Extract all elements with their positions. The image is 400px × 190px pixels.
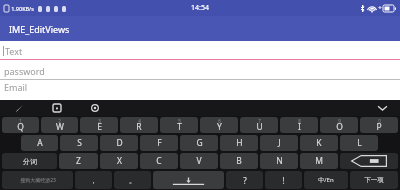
staticText: 搜狗大藏经游23 <box>20 177 56 184</box>
staticText: Y <box>217 121 222 133</box>
button[interactable]: ， <box>75 171 112 189</box>
button[interactable]: password <box>0 60 400 80</box>
staticText: 7 <box>258 118 261 124</box>
button[interactable]: A <box>21 135 58 151</box>
button[interactable]: Clipboard <box>49 100 65 116</box>
staticText: Email <box>4 81 28 93</box>
staticText: D <box>116 137 123 149</box>
button[interactable]: Z <box>59 153 98 169</box>
staticText: 。 <box>129 176 136 185</box>
staticText: 6 <box>218 118 221 124</box>
staticText: 8 <box>298 118 301 124</box>
button[interactable]: 3 <box>80 117 118 133</box>
button[interactable]: 分词 <box>2 153 57 169</box>
staticText: F <box>157 137 162 149</box>
button[interactable]: S <box>60 135 98 151</box>
staticText: K <box>316 137 322 149</box>
staticText: 14:54 <box>191 3 209 13</box>
button[interactable]: L <box>340 135 378 151</box>
button[interactable]: 中/En <box>304 171 348 189</box>
button[interactable]: F <box>140 135 178 151</box>
staticText: W <box>56 121 64 133</box>
staticText: O <box>336 121 343 133</box>
staticText: L <box>357 137 362 149</box>
button[interactable]: ! <box>265 171 302 189</box>
staticText: G <box>196 137 203 149</box>
button[interactable]: ? <box>226 171 263 189</box>
staticText: 1.90KB/s <box>11 5 34 12</box>
button[interactable]: M <box>300 153 338 169</box>
button[interactable]: Backspace <box>340 153 398 169</box>
staticText: E <box>97 121 102 133</box>
staticText: ? <box>243 175 247 186</box>
staticText: 5 <box>178 118 181 124</box>
button[interactable]: D <box>100 135 138 151</box>
staticText: M <box>315 155 323 167</box>
staticText: IME_EditViews <box>9 23 70 35</box>
button[interactable]: Settings <box>87 100 103 116</box>
button[interactable]: C <box>140 153 178 169</box>
button[interactable]: 。 <box>114 171 151 189</box>
button[interactable]: 7 <box>240 117 278 133</box>
button[interactable]: V <box>180 153 218 169</box>
button[interactable]: 2 <box>41 117 78 133</box>
button[interactable]: Hide keyboard <box>374 100 390 116</box>
button[interactable]: X <box>100 153 138 169</box>
button[interactable]: H <box>220 135 258 151</box>
button[interactable]: 8 <box>280 117 318 133</box>
staticText: 分词 <box>23 157 37 166</box>
staticText: R <box>136 121 142 133</box>
staticText: 9 <box>338 118 341 124</box>
button[interactable]: G <box>180 135 218 151</box>
staticText: ， <box>90 176 97 185</box>
staticText: Text <box>5 45 23 57</box>
staticText: T <box>177 121 182 133</box>
button[interactable]: K <box>300 135 338 151</box>
button[interactable]: 5 <box>160 117 198 133</box>
staticText: C <box>156 155 162 167</box>
staticText: + <box>378 4 382 12</box>
button[interactable]: Space <box>153 171 224 189</box>
staticText: X <box>117 155 122 167</box>
button[interactable]: 6 <box>200 117 238 133</box>
staticText: U <box>256 121 263 133</box>
staticText: H <box>236 137 243 149</box>
button[interactable]: J <box>260 135 298 151</box>
staticText: 1 <box>19 118 22 124</box>
staticText: B <box>236 155 242 167</box>
staticText: password <box>4 65 45 77</box>
button[interactable]: 1 <box>2 117 39 133</box>
staticText: P <box>376 121 382 133</box>
button[interactable]: Email <box>0 80 400 100</box>
staticText: S <box>77 137 82 149</box>
button[interactable]: Text <box>0 41 400 60</box>
button[interactable]: 4 <box>120 117 158 133</box>
button[interactable]: 9 <box>320 117 358 133</box>
staticText: 4 <box>138 118 141 124</box>
staticText: Q <box>17 121 24 133</box>
staticText: ! <box>282 175 285 186</box>
staticText: 下一项 <box>364 176 384 184</box>
button[interactable]: 搜狗大藏经游23 <box>2 171 73 189</box>
staticText: V <box>196 155 202 167</box>
staticText: I <box>298 121 301 133</box>
staticText: 2 <box>58 118 61 124</box>
button[interactable]: Handwriting <box>11 100 27 116</box>
button[interactable]: 下一项 <box>350 171 398 189</box>
staticText: J <box>278 137 281 149</box>
staticText: 中/En <box>318 176 334 184</box>
button[interactable]: N <box>260 153 298 169</box>
button[interactable]: 0 <box>360 117 398 133</box>
staticText: 0 <box>378 118 381 124</box>
staticText: Z <box>76 155 81 167</box>
button[interactable]: B <box>220 153 258 169</box>
staticText: A <box>37 137 43 149</box>
staticText: N <box>276 155 283 167</box>
staticText: 3 <box>98 118 101 124</box>
